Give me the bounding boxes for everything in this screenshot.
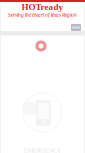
staticText: EMERGENCY [24,147,61,153]
staticText: HOTready [21,2,63,12]
button[interactable]: Translate [71,24,81,31]
staticText: Serving the Heart of Texas Region [8,12,77,18]
